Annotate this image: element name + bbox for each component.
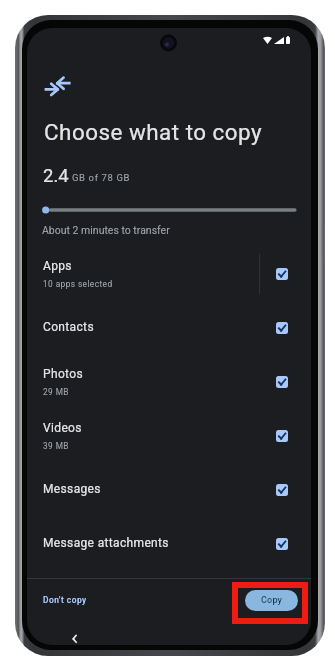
staticText: Copy	[261, 595, 283, 606]
staticText: 2.4	[43, 165, 69, 187]
button[interactable]: Photos	[27, 355, 311, 409]
staticText: 29 MB	[43, 387, 69, 397]
button[interactable]: Apps	[27, 247, 311, 301]
staticText: About 2 minutes to transfer	[42, 224, 170, 236]
staticText: 10 apps selected	[43, 279, 113, 289]
staticText: Messages	[43, 482, 101, 496]
staticText: Photos	[43, 367, 83, 381]
staticText: Videos	[43, 421, 82, 435]
button[interactable]: Copy	[245, 590, 298, 611]
staticText: Apps	[43, 259, 72, 273]
button[interactable]: Messages	[27, 463, 311, 517]
staticText: 39 MB	[43, 441, 69, 451]
button[interactable]: Transfer	[38, 71, 78, 101]
button[interactable]: Don't copy	[36, 590, 94, 610]
button[interactable]: Message attachments	[27, 517, 311, 571]
staticText: Contacts	[43, 320, 94, 334]
staticText: Message attachments	[43, 536, 169, 550]
staticText: GB of 78 GB	[72, 172, 131, 183]
button[interactable]: Videos	[27, 409, 311, 463]
button[interactable]: Contacts	[27, 301, 311, 355]
button[interactable]: Back	[68, 630, 81, 643]
staticText: Choose what to copy	[44, 119, 263, 145]
